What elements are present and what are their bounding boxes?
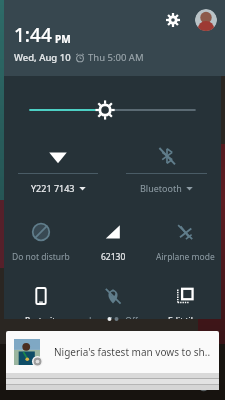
button[interactable]: Portrait xyxy=(4,282,77,319)
button[interactable]: Do not disturb xyxy=(4,218,77,266)
button[interactable]: Brightness xyxy=(30,98,195,122)
staticText: Thu 5:00 AM xyxy=(88,51,144,64)
staticText: Y221 7143 xyxy=(31,182,75,194)
staticText: 62130 xyxy=(101,251,126,263)
staticText: Edit tiles xyxy=(168,315,202,319)
button[interactable]: Edit tiles xyxy=(149,282,221,319)
button[interactable]: User account xyxy=(195,9,217,31)
staticText: Bluetooth xyxy=(140,182,182,194)
button[interactable]: Location Off xyxy=(77,282,149,319)
staticText: Location Off xyxy=(89,315,138,319)
staticText: 1:44 xyxy=(14,22,52,48)
staticText: PM xyxy=(55,32,71,46)
button[interactable]: Airplane mode xyxy=(149,218,221,266)
button[interactable]: Settings xyxy=(161,8,185,32)
staticText: Airplane mode xyxy=(156,251,215,263)
button[interactable]: 62130 xyxy=(77,218,149,266)
staticText: Portrait xyxy=(25,315,56,319)
button[interactable]: Bluetooth xyxy=(112,142,221,200)
button[interactable]: Y221 7143 xyxy=(4,142,112,200)
staticText: Wed, Aug 10 xyxy=(14,51,71,64)
button[interactable]: Nigeria's fastest man vows to sh.. xyxy=(6,331,219,373)
staticText: Nigeria's fastest man vows to sh.. xyxy=(54,345,211,359)
staticText: Do not disturb xyxy=(12,251,70,263)
